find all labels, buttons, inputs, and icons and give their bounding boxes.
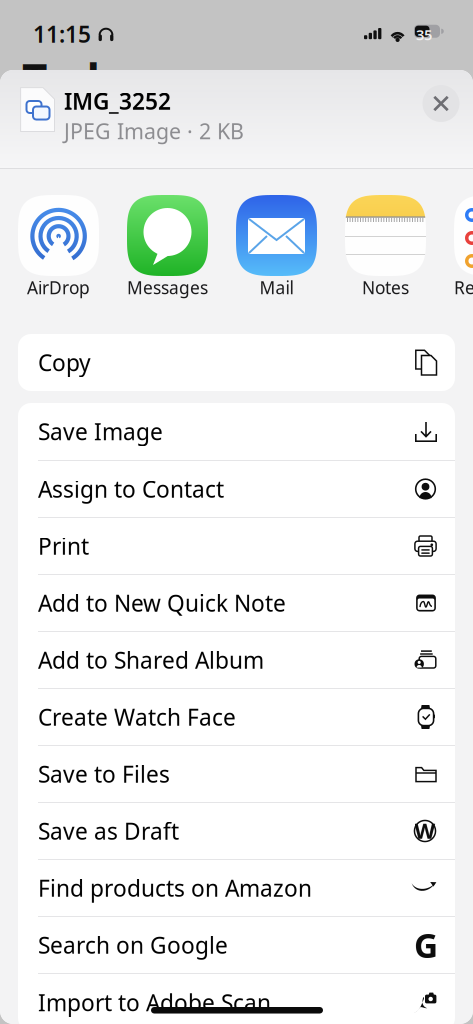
- staticText: JPEG Image · 2 KB: [64, 117, 244, 145]
- staticText: Search on Google: [38, 930, 228, 960]
- button[interactable]: Save Image: [18, 403, 455, 460]
- staticText: Save Image: [38, 416, 163, 446]
- button[interactable]: Save as Draft: [18, 803, 455, 859]
- staticText: W: [414, 816, 435, 845]
- staticText: Create Watch Face: [38, 702, 236, 732]
- staticText: Messages: [127, 276, 208, 299]
- button[interactable]: Find products on Amazon: [18, 860, 455, 916]
- staticText: Assign to Contact: [38, 474, 224, 504]
- button[interactable]: Print: [18, 518, 455, 574]
- button[interactable]: Import to Adobe Scan: [18, 974, 455, 1024]
- staticText: Add to New Quick Note: [38, 588, 286, 618]
- staticText: Import to Adobe Scan: [38, 987, 271, 1017]
- button[interactable]: Add to New Quick Note: [18, 575, 455, 631]
- button[interactable]: Notes: [345, 195, 426, 299]
- staticText: Notes: [362, 276, 409, 299]
- button[interactable]: Assign to Contact: [18, 461, 455, 517]
- button[interactable]: Mail: [236, 195, 317, 299]
- button[interactable]: Reminders: [454, 195, 473, 299]
- staticText: 35: [416, 25, 432, 44]
- button[interactable]: Close: [415, 77, 467, 129]
- staticText: Find products on Amazon: [38, 873, 312, 903]
- staticText: Mail: [259, 276, 293, 299]
- button[interactable]: AirDrop: [18, 195, 99, 299]
- staticText: IMG_3252: [64, 86, 171, 116]
- button[interactable]: Copy: [18, 334, 455, 391]
- staticText: Today: [22, 50, 151, 108]
- staticText: Reminders: [454, 276, 473, 299]
- staticText: Save to Files: [38, 759, 170, 789]
- staticText: 11:15: [33, 19, 91, 49]
- staticText: Copy: [38, 347, 91, 377]
- button[interactable]: Create Watch Face: [18, 689, 455, 745]
- button[interactable]: Save to Files: [18, 746, 455, 802]
- button[interactable]: Messages: [127, 195, 208, 299]
- staticText: Save as Draft: [38, 816, 179, 846]
- staticText: Print: [38, 531, 89, 561]
- button[interactable]: Search on Google: [18, 917, 455, 973]
- staticText: AirDrop: [27, 276, 90, 299]
- staticText: G: [414, 923, 438, 967]
- button[interactable]: Add to Shared Album: [18, 632, 455, 688]
- staticText: Add to Shared Album: [38, 645, 264, 675]
